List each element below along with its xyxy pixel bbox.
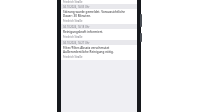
button[interactable]: 04.10.2024, 14:27 Uhr [61, 40, 137, 45]
staticText: 04.10.2024, 14:05 Uhr [63, 5, 90, 9]
button[interactable]: 04.10.2024, 14:05 Uhr [61, 4, 137, 9]
button[interactable]: Reinigungskraft informiert. [61, 29, 137, 40]
staticText: Störung wurde gemeldet. Voraussichtliche [63, 10, 126, 14]
staticText: Friedrich Straße [63, 35, 83, 39]
staticText: Friedrich Straße [63, 19, 83, 23]
button[interactable]: Friedrich Straße [61, 0, 137, 4]
staticText: Reinigungskraft informiert. [63, 30, 104, 34]
staticText: Dauer: 30 Minuten. [63, 14, 91, 18]
staticText: Filter/Filter-Absatz verschmutzt [63, 46, 110, 50]
staticText: 04.10.2024, 14:18 Uhr [63, 25, 90, 29]
button[interactable]: Filter/Filter-Absatz verschmutzt [61, 45, 137, 60]
other: Volume up [140, 14, 142, 27]
staticText: Friedrich Straße [63, 55, 83, 59]
staticText: 04.10.2024, 14:27 Uhr [63, 41, 90, 45]
staticText: Außerordentliche Reinigung nötig. [63, 50, 114, 54]
button[interactable]: Störung wurde gemeldet. Voraussichtliche [61, 9, 137, 24]
button[interactable]: 04.10.2024, 14:18 Uhr [61, 24, 137, 29]
other: Power [140, 33, 142, 42]
staticText: Friedrich Straße [63, 0, 83, 4]
